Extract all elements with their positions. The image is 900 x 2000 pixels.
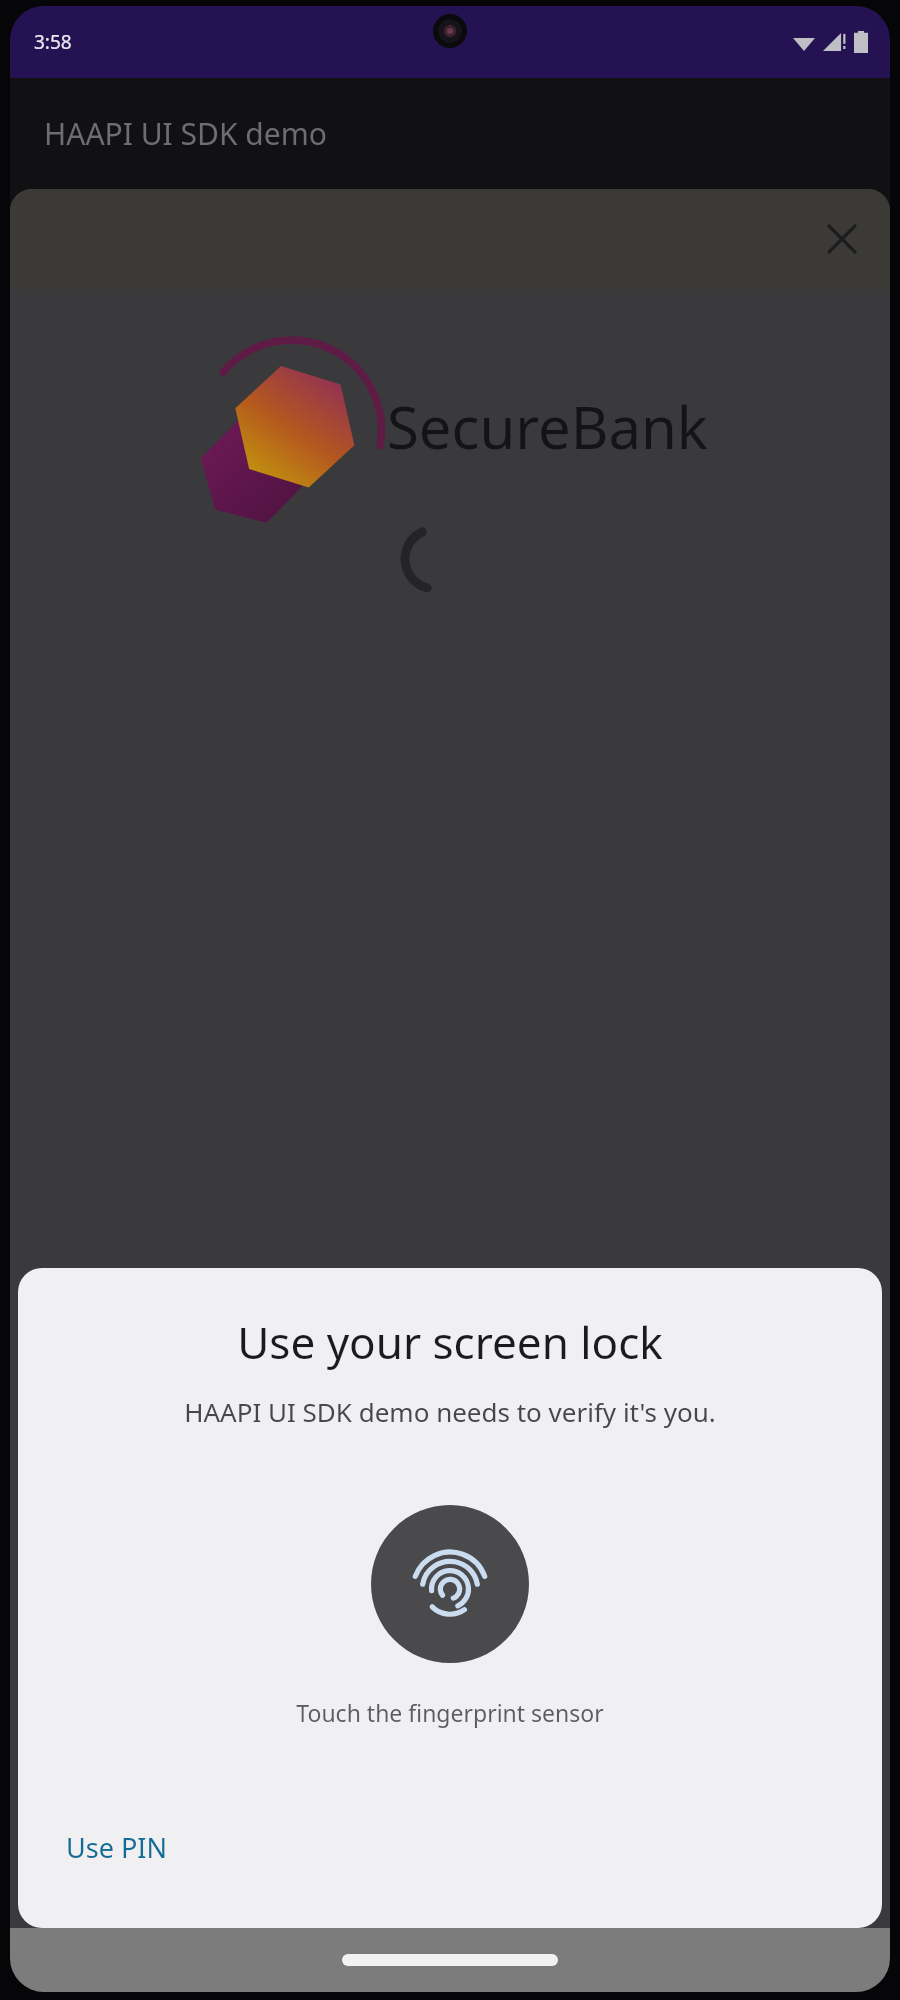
staticText: HAAPI UI SDK demo needs to verify it's y… xyxy=(184,1394,716,1429)
staticText: Use PIN xyxy=(66,1829,167,1866)
staticText: HAAPI UI SDK demo xyxy=(44,113,327,154)
staticText: 3:58 xyxy=(34,29,72,55)
staticText: Touch the fingerprint sensor xyxy=(296,1697,604,1728)
button[interactable]: Use PIN xyxy=(58,1823,175,1872)
staticText: SecureBank xyxy=(387,387,708,466)
button[interactable]: Close xyxy=(814,211,870,267)
button[interactable]: Fingerprint sensor xyxy=(371,1505,529,1663)
staticText: Use your screen lock xyxy=(237,1312,663,1372)
